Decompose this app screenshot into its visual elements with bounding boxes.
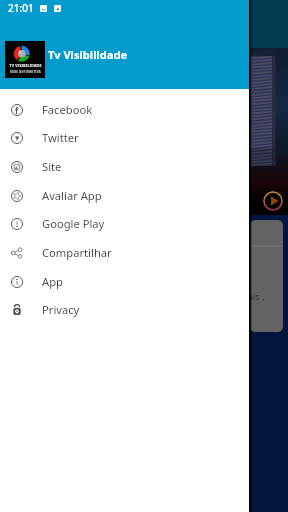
button[interactable]: f (0, 95, 249, 124)
button[interactable]: Privacy (0, 295, 249, 324)
staticText: Privacy (42, 302, 80, 317)
staticText: Avaliar App (42, 188, 102, 203)
staticText: TV VISIBILIDADE (9, 63, 42, 68)
button[interactable]: Site (0, 152, 249, 181)
button[interactable]: Google Play (0, 209, 249, 238)
staticText: ais , (250, 290, 265, 302)
button[interactable]: 21:01 (0, 0, 249, 89)
button[interactable]: App (0, 267, 249, 296)
staticText: REDE AUTOMOTIVA (10, 70, 41, 74)
staticText: 21:01 (8, 1, 34, 15)
staticText: Site (42, 159, 62, 174)
button[interactable]: Play video (263, 191, 283, 211)
staticText: Google Play (42, 216, 105, 231)
staticText: Tv Visibilidade (48, 47, 128, 62)
staticText: Twitter (42, 130, 79, 145)
button[interactable]: ais , (250, 220, 283, 332)
staticText: Compartilhar (42, 245, 112, 260)
button[interactable]: Avaliar App (0, 181, 249, 210)
staticText: Facebook (42, 102, 93, 117)
staticText: App (42, 274, 63, 289)
staticText: f (15, 105, 19, 116)
button[interactable]: Compartilhar (0, 238, 249, 267)
button[interactable]: Twitter (0, 123, 249, 152)
